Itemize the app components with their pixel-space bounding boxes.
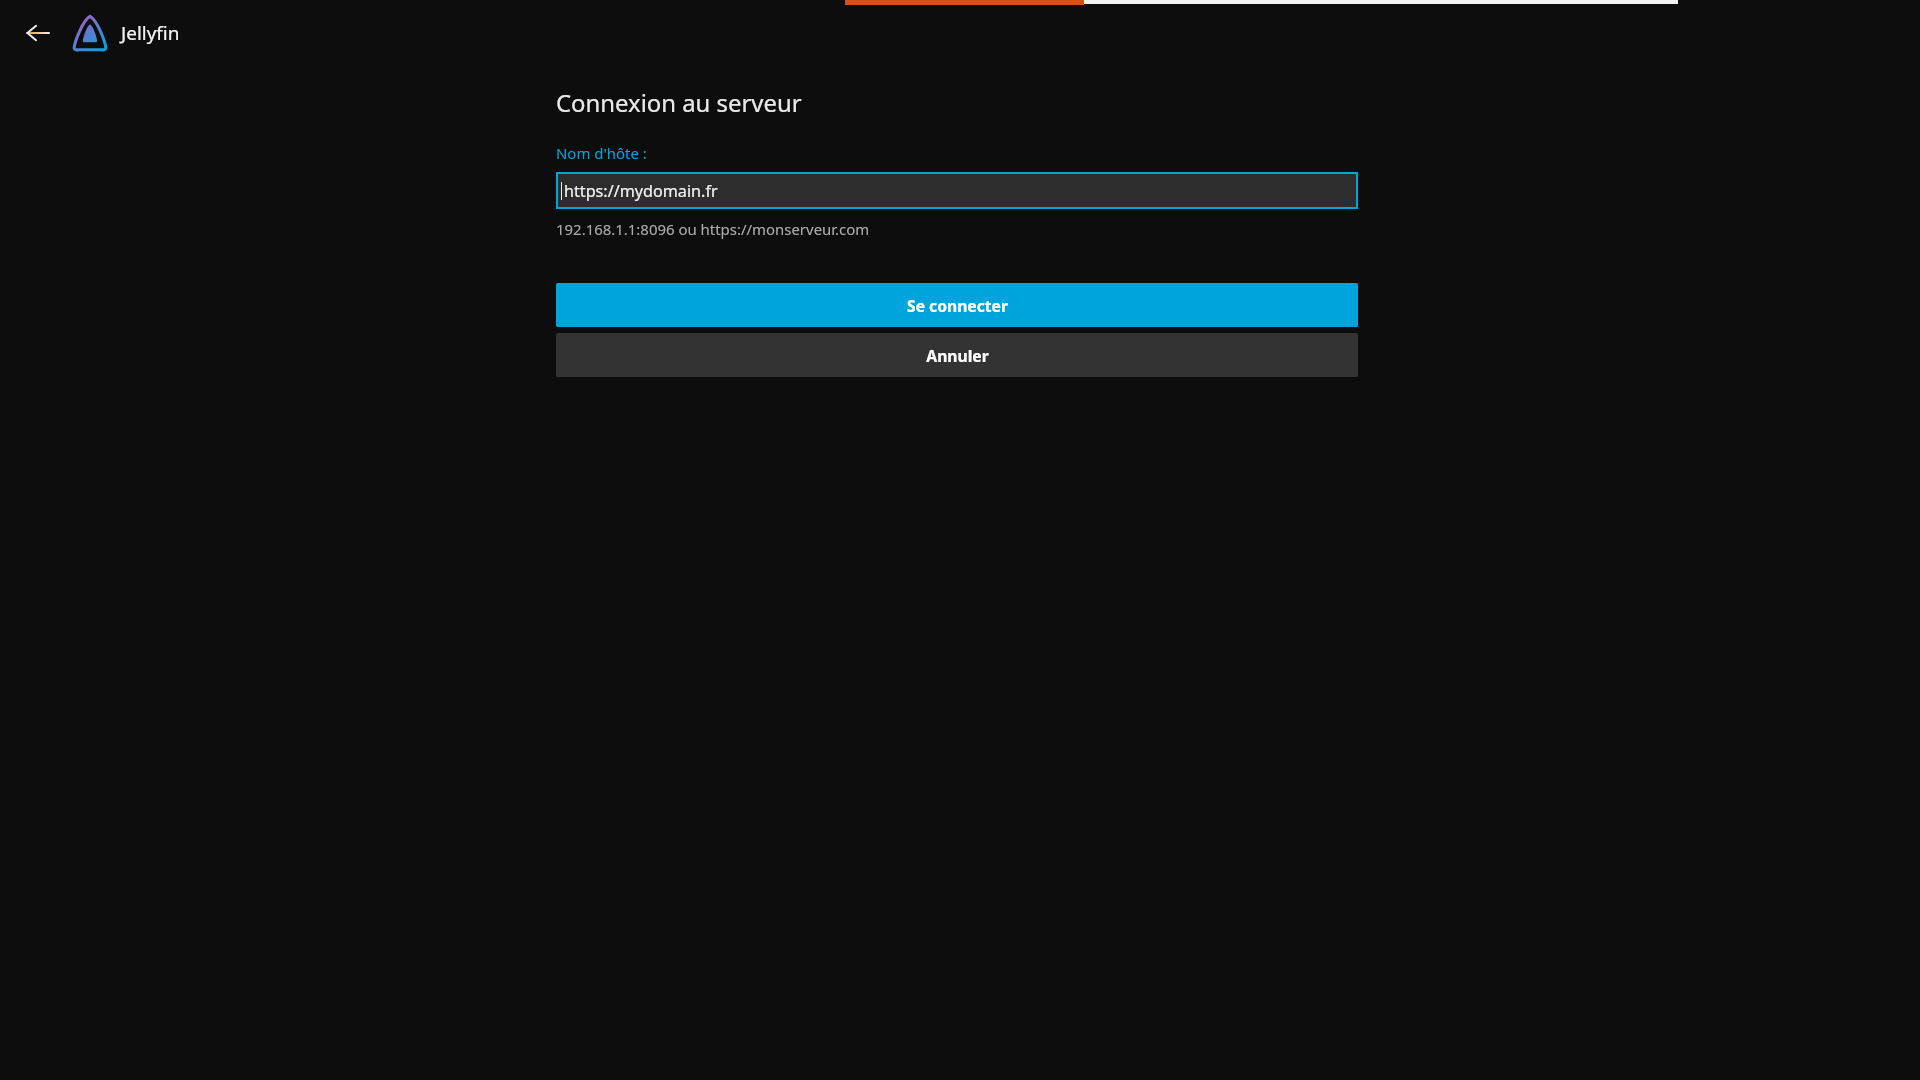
staticText: Annuler	[926, 345, 989, 366]
button[interactable]: https://mydomain.fr	[556, 172, 1358, 209]
button[interactable]: Annuler	[556, 333, 1358, 377]
button[interactable]: Back	[17, 12, 59, 54]
staticText: Jellyfin	[121, 20, 180, 46]
staticText: https://mydomain.fr	[564, 180, 718, 202]
staticText: Connexion au serveur	[556, 86, 802, 119]
staticText: Nom d'hôte :	[556, 143, 647, 163]
staticText: 192.168.1.1:8096 ou https://monserveur.c…	[556, 219, 870, 239]
button[interactable]: Se connecter	[556, 283, 1358, 327]
staticText: Se connecter	[907, 295, 1008, 316]
